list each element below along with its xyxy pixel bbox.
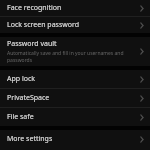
other: Lock screen password bbox=[139, 21, 145, 30]
button[interactable]: PrivateSpace bbox=[0, 89, 150, 107]
button[interactable]: More settings bbox=[0, 130, 150, 148]
other: Face recognition bbox=[139, 4, 145, 13]
staticText: More settings bbox=[7, 134, 53, 144]
staticText: Password vault bbox=[7, 39, 57, 49]
staticText: PrivateSpace bbox=[7, 93, 50, 103]
button[interactable]: Lock screen password bbox=[0, 17, 150, 33]
other: App lock bbox=[139, 75, 145, 84]
staticText: Face recognition bbox=[7, 3, 62, 13]
other: PrivateSpace bbox=[139, 94, 145, 103]
other: File safe bbox=[139, 113, 145, 122]
button[interactable]: Face recognition bbox=[0, 0, 150, 16]
staticText: File safe bbox=[7, 112, 34, 122]
staticText: App lock bbox=[7, 74, 36, 84]
staticText: Lock screen password bbox=[7, 20, 80, 30]
button[interactable]: Password vault bbox=[0, 37, 150, 66]
other: Password vault bbox=[139, 47, 145, 56]
other: More settings bbox=[139, 135, 145, 144]
staticText: Automatically save and fill in your user… bbox=[7, 50, 136, 64]
button[interactable]: App lock bbox=[0, 70, 150, 88]
button[interactable]: File safe bbox=[0, 108, 150, 126]
